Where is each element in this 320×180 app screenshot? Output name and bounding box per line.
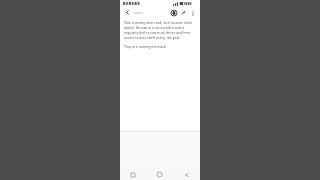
button[interactable]: More options (189, 9, 197, 17)
button[interactable]: Share (179, 8, 188, 17)
staticText: They are turning the mark. (124, 44, 167, 49)
button[interactable]: Contrast (169, 8, 178, 17)
button[interactable]: Home (146, 169, 173, 180)
button[interactable]: Back (173, 169, 200, 180)
button[interactable]: Recents (120, 169, 146, 180)
button[interactable]: Back (123, 8, 132, 17)
staticText: Take a wrong item cook, lock cocaine (co… (124, 20, 196, 40)
